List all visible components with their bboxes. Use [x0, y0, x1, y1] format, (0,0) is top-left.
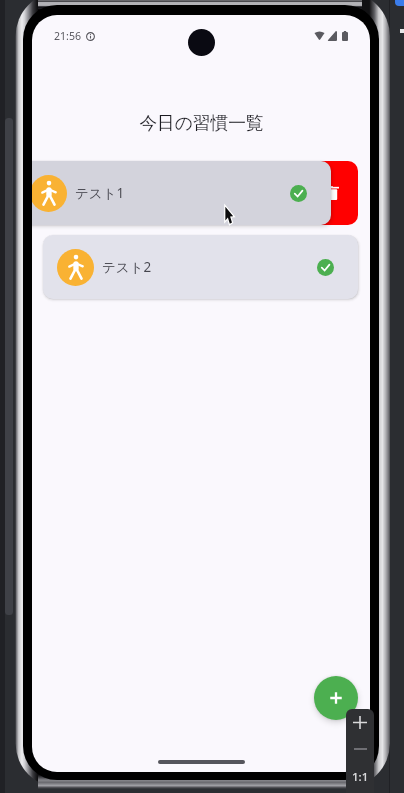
- button[interactable]: 削除: [43, 161, 358, 225]
- button[interactable]: 習慣を追加: [314, 676, 358, 720]
- button[interactable]: Zoom in: [346, 709, 374, 735]
- button[interactable]: Zoom out: [346, 735, 374, 762]
- staticText: テスト1: [75, 184, 125, 202]
- staticText: テスト2: [102, 258, 152, 276]
- staticText: 1:1: [352, 769, 369, 785]
- button[interactable]: テスト2: [43, 235, 358, 299]
- button[interactable]: 1:1: [346, 762, 374, 792]
- staticText: 今日の習慣一覧: [139, 112, 264, 134]
- button[interactable]: テスト1: [32, 161, 331, 225]
- staticText: 21:56: [54, 29, 82, 43]
